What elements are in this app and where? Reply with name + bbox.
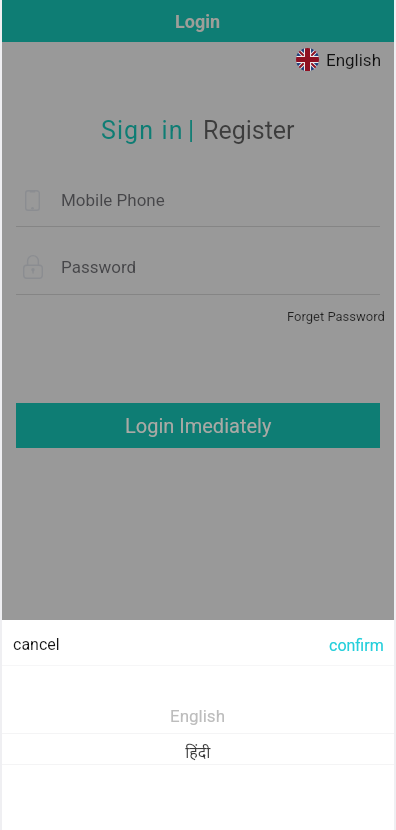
button[interactable]: cancel bbox=[2, 621, 72, 664]
staticText: English bbox=[170, 706, 226, 726]
button[interactable]: English bbox=[288, 45, 394, 77]
button[interactable]: Sign in bbox=[101, 116, 184, 145]
staticText: Password bbox=[61, 257, 137, 277]
staticText: English bbox=[326, 50, 382, 70]
other: Password bbox=[23, 256, 43, 279]
staticText: Mobile Phone bbox=[61, 190, 165, 210]
button[interactable]: Register bbox=[203, 116, 295, 145]
staticText: cancel bbox=[13, 635, 60, 654]
other: Phone bbox=[25, 190, 40, 211]
button[interactable]: हिंदी bbox=[2, 737, 394, 767]
staticText: Forget Password bbox=[287, 309, 385, 324]
staticText: Login bbox=[175, 11, 221, 32]
button[interactable]: Forget Password bbox=[278, 305, 394, 328]
staticText: Login Imediately bbox=[125, 414, 272, 437]
button[interactable]: Login Imediately bbox=[16, 403, 380, 448]
button[interactable]: Password bbox=[16, 249, 380, 285]
button[interactable]: English bbox=[2, 700, 394, 731]
staticText: हिंदी bbox=[185, 741, 211, 763]
staticText: | bbox=[188, 116, 195, 145]
staticText: confirm bbox=[329, 636, 384, 655]
button[interactable]: confirm bbox=[317, 621, 394, 664]
button[interactable]: Phone bbox=[16, 182, 380, 218]
